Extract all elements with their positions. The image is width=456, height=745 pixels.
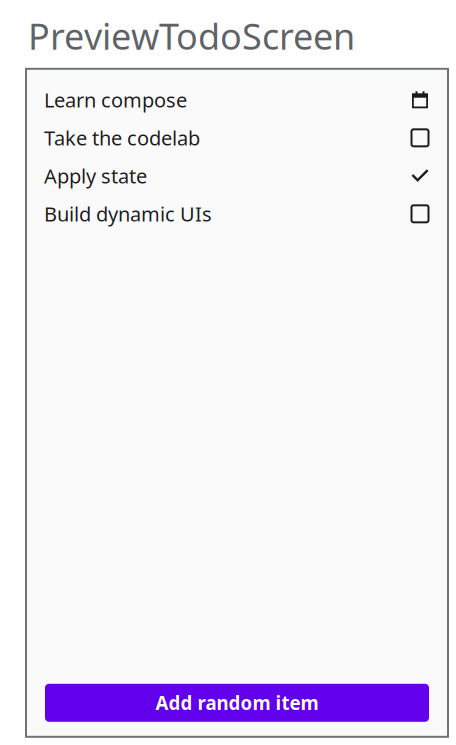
- button[interactable]: Apply state: [26, 157, 448, 195]
- button[interactable]: Take the codelab: [26, 119, 448, 157]
- button[interactable]: Add random item: [45, 684, 429, 722]
- staticText: Add random item: [155, 690, 318, 715]
- staticText: Learn compose: [44, 86, 187, 113]
- button[interactable]: Learn compose: [26, 81, 448, 119]
- staticText: PreviewTodoScreen: [28, 12, 355, 60]
- staticText: Take the codelab: [44, 124, 200, 151]
- button[interactable]: Build dynamic UIs: [26, 195, 448, 233]
- staticText: Apply state: [44, 162, 147, 189]
- staticText: Build dynamic UIs: [44, 200, 212, 227]
